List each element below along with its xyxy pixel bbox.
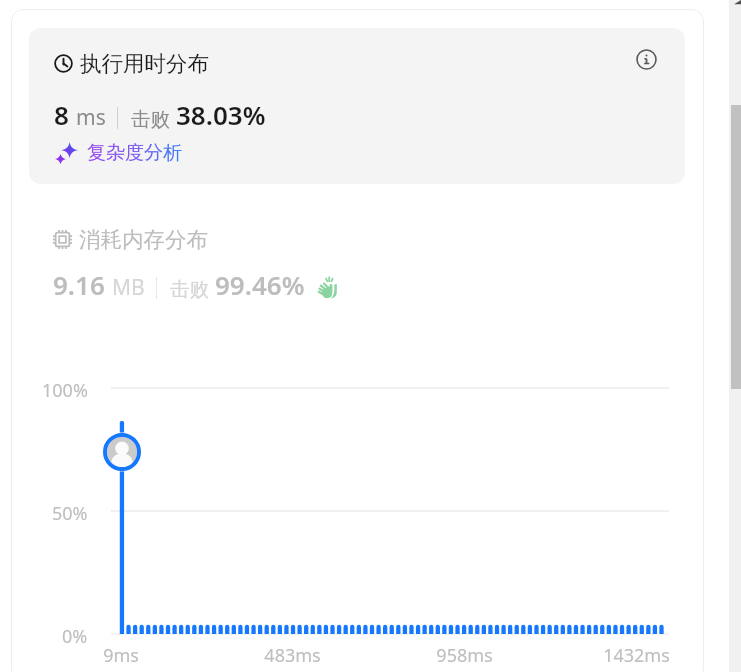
staticText: ms	[76, 103, 106, 132]
button[interactable]: Info	[634, 47, 659, 72]
staticText: 9ms	[103, 643, 139, 668]
staticText: 958ms	[436, 643, 493, 668]
button[interactable]: 执行用时分布	[29, 28, 685, 184]
staticText: 复杂度分析	[87, 141, 182, 165]
staticText: 消耗内存分布	[79, 226, 208, 253]
staticText: 击败	[131, 107, 170, 132]
button[interactable]: 复杂度分析	[55, 141, 182, 165]
staticText: 99.46%	[215, 267, 305, 302]
staticText: MB	[112, 273, 145, 302]
staticText: 38.03%	[176, 97, 266, 132]
staticText: 执行用时分布	[80, 50, 209, 77]
button[interactable]: Scroll up	[729, 0, 741, 6]
staticText: 8	[54, 97, 69, 132]
staticText: 1432ms	[603, 643, 670, 668]
staticText: 100%	[42, 378, 88, 403]
button[interactable]: 消耗内存分布	[53, 226, 208, 253]
staticText: 483ms	[264, 643, 321, 668]
staticText: 9.16	[53, 267, 105, 302]
staticText: 0%	[62, 624, 88, 649]
staticText: 击败	[170, 277, 209, 302]
staticText: 50%	[52, 501, 88, 526]
